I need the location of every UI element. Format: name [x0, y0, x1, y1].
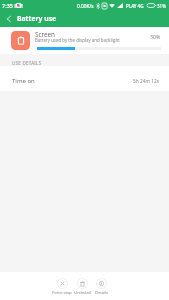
- staticText: Uninstall: [74, 290, 91, 295]
- staticText: 0.00K/s: [77, 3, 94, 10]
- button[interactable]: Screen: [0, 27, 169, 54]
- staticText: USE DETAILS: [12, 60, 42, 66]
- button[interactable]: Details: [87, 278, 115, 295]
- staticText: Battery use: [17, 14, 57, 23]
- staticText: 31%: [157, 3, 166, 9]
- staticText: Details: [95, 290, 108, 295]
- staticText: Screen: [35, 30, 55, 39]
- staticText: 7:35 PM: [2, 2, 23, 9]
- button[interactable]: Time on: [0, 66, 169, 91]
- staticText: PLAY 4G: [126, 3, 144, 9]
- staticText: Force stop: [52, 290, 72, 295]
- staticText: Battery used by the display and backligh…: [35, 37, 120, 43]
- button[interactable]: Uninstall: [68, 278, 96, 295]
- staticText: 30%: [150, 33, 161, 40]
- staticText: 5h 24m 12s: [133, 78, 159, 85]
- button[interactable]: Force stop: [48, 278, 76, 295]
- button[interactable]: Back: [0, 11, 17, 27]
- staticText: Time on: [12, 77, 35, 85]
